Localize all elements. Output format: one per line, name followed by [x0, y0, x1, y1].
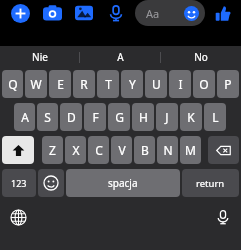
- staticText: Q: [8, 76, 18, 92]
- staticText: V: [118, 142, 126, 158]
- button[interactable]: Camera: [39, 0, 65, 26]
- button[interactable]: 123: [2, 169, 36, 197]
- button[interactable]: W: [25, 70, 47, 98]
- button[interactable]: D: [60, 103, 82, 131]
- staticText: R: [80, 76, 88, 92]
- staticText: D: [67, 109, 76, 125]
- staticText: C: [95, 142, 103, 158]
- staticText: H: [139, 109, 148, 125]
- button[interactable]: V: [111, 136, 132, 164]
- staticText: G: [115, 109, 124, 125]
- staticText: K: [187, 109, 195, 125]
- button[interactable]: Add: [7, 0, 33, 26]
- button[interactable]: Photos: [71, 0, 97, 26]
- button[interactable]: M: [180, 136, 201, 164]
- staticText: A: [117, 50, 124, 64]
- button[interactable]: No: [161, 46, 241, 68]
- staticText: P: [224, 76, 232, 92]
- staticText: 123: [11, 177, 27, 189]
- button[interactable]: return: [182, 169, 239, 197]
- button[interactable]: H: [132, 103, 154, 131]
- button[interactable]: E: [49, 70, 71, 98]
- staticText: J: [165, 109, 169, 125]
- button[interactable]: A: [80, 46, 160, 68]
- button[interactable]: Dictate: [211, 205, 235, 229]
- button[interactable]: B: [134, 136, 155, 164]
- button[interactable]: G: [108, 103, 130, 131]
- staticText: I: [178, 76, 183, 92]
- staticText: Aa: [146, 6, 160, 21]
- button[interactable]: Y: [121, 70, 143, 98]
- staticText: No: [194, 50, 208, 64]
- button[interactable]: Change keyboard language: [6, 205, 30, 229]
- staticText: T: [105, 76, 112, 92]
- button[interactable]: L: [204, 103, 226, 131]
- staticText: return: [196, 177, 225, 190]
- button[interactable]: J: [156, 103, 178, 131]
- button[interactable]: Voice message: [103, 0, 129, 26]
- staticText: W: [30, 76, 42, 92]
- button[interactable]: P: [217, 70, 239, 98]
- staticText: E: [57, 76, 64, 92]
- staticText: B: [141, 142, 149, 158]
- button[interactable]: U: [145, 70, 167, 98]
- button[interactable]: R: [73, 70, 95, 98]
- staticText: S: [44, 109, 51, 125]
- button[interactable]: T: [97, 70, 119, 98]
- button[interactable]: Q: [2, 70, 23, 98]
- staticText: Nie: [32, 50, 48, 64]
- button[interactable]: A: [14, 103, 35, 131]
- button[interactable]: Nie: [0, 46, 79, 68]
- staticText: M: [185, 142, 196, 158]
- staticText: F: [92, 109, 99, 125]
- button[interactable]: Z: [42, 136, 63, 164]
- staticText: A: [21, 109, 29, 125]
- button[interactable]: Shift: [2, 136, 34, 164]
- staticText: Z: [49, 142, 56, 158]
- staticText: Y: [129, 76, 136, 92]
- button[interactable]: I: [169, 70, 191, 98]
- button[interactable]: K: [180, 103, 202, 131]
- button[interactable]: Emoji: [38, 169, 64, 197]
- staticText: L: [212, 109, 219, 125]
- button[interactable]: F: [84, 103, 106, 131]
- staticText: U: [152, 76, 161, 92]
- button[interactable]: Delete: [208, 136, 239, 164]
- staticText: X: [72, 142, 80, 158]
- button[interactable]: Like: [210, 1, 234, 25]
- button[interactable]: C: [88, 136, 109, 164]
- button[interactable]: S: [37, 103, 58, 131]
- staticText: N: [163, 142, 173, 158]
- staticText: spacja: [108, 176, 138, 190]
- button[interactable]: X: [65, 136, 86, 164]
- button[interactable]: N: [157, 136, 178, 164]
- staticText: O: [199, 76, 209, 92]
- button[interactable]: spacja: [66, 169, 180, 197]
- button[interactable]: O: [193, 70, 215, 98]
- button[interactable]: Aa: [135, 0, 205, 26]
